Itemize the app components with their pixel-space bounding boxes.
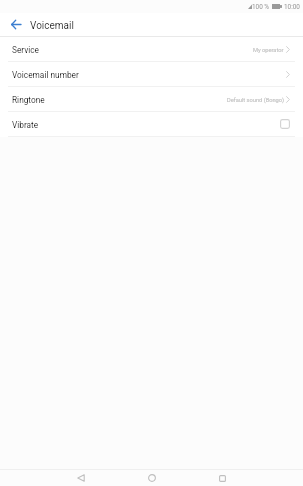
staticText: Ringtone bbox=[12, 95, 45, 105]
button[interactable]: Ringtone bbox=[0, 87, 303, 111]
staticText: Voicemail bbox=[30, 20, 74, 32]
staticText: Vibrate bbox=[12, 120, 39, 130]
staticText: 10:00 bbox=[284, 3, 300, 11]
button[interactable]: Home bbox=[136, 470, 167, 486]
button[interactable]: Back bbox=[0, 13, 30, 36]
button[interactable]: Recent apps bbox=[207, 470, 238, 486]
staticText: 100 % bbox=[252, 3, 270, 11]
button[interactable]: Back bbox=[65, 470, 96, 486]
button[interactable]: Vibrate bbox=[0, 112, 303, 136]
button[interactable]: Voicemail number bbox=[0, 62, 303, 86]
button[interactable]: Service bbox=[0, 37, 303, 61]
staticText: Voicemail number bbox=[12, 70, 79, 80]
staticText: My operator bbox=[253, 47, 284, 54]
staticText: Service bbox=[12, 45, 39, 55]
staticText: Default sound (Bongo) bbox=[227, 97, 284, 104]
